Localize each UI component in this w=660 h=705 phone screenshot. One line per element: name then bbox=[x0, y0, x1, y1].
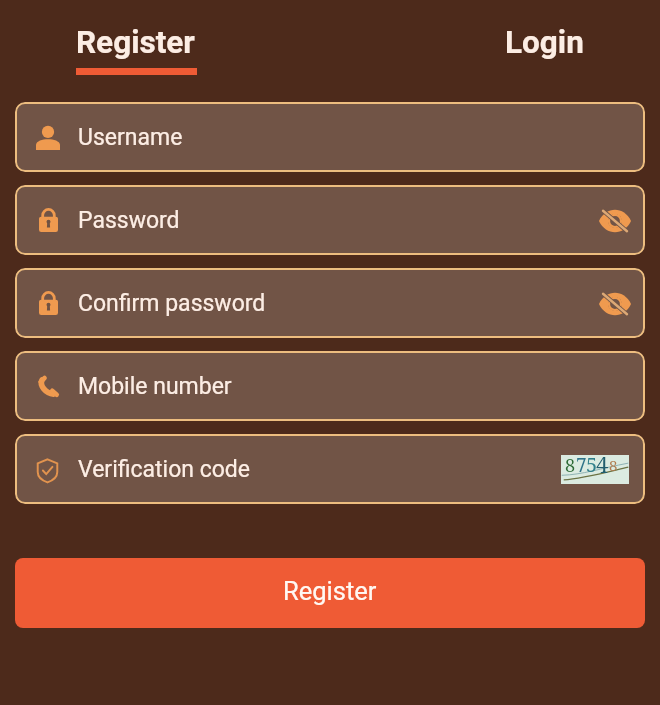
staticText: Register bbox=[283, 576, 377, 606]
staticText: Username bbox=[78, 124, 183, 151]
staticText: 7 bbox=[576, 452, 587, 478]
button[interactable]: Username bbox=[15, 102, 645, 172]
button[interactable]: Toggle password visibility bbox=[584, 270, 645, 336]
staticText: Confirm password bbox=[78, 290, 266, 317]
button[interactable]: Confirm password bbox=[15, 268, 645, 338]
staticText: Mobile number bbox=[78, 373, 232, 400]
button[interactable]: Verification code bbox=[15, 434, 645, 504]
button[interactable]: Password bbox=[15, 185, 645, 255]
staticText: 8 bbox=[565, 453, 576, 478]
staticText: 4 bbox=[596, 449, 609, 478]
staticText: 8 bbox=[609, 455, 618, 475]
button[interactable]: Toggle password visibility bbox=[584, 187, 645, 253]
button[interactable]: Register bbox=[76, 24, 197, 75]
button[interactable]: Mobile number bbox=[15, 351, 645, 421]
staticText: Login bbox=[505, 24, 584, 61]
button[interactable]: Register bbox=[15, 558, 645, 628]
staticText: Verification code bbox=[78, 456, 250, 483]
button[interactable]: Login bbox=[505, 24, 584, 61]
staticText: Password bbox=[78, 207, 180, 234]
button[interactable]: Refresh captcha bbox=[561, 455, 629, 484]
staticText: 5 bbox=[586, 451, 598, 478]
staticText: Register bbox=[76, 24, 195, 61]
